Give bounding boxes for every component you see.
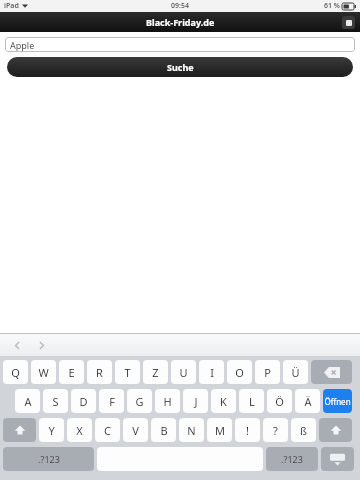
button[interactable]: .?123	[3, 447, 94, 471]
button[interactable]: S	[43, 389, 68, 413]
staticText: Black-Friday.de	[146, 16, 215, 28]
button[interactable]: D	[71, 389, 96, 413]
staticText: V	[132, 423, 139, 438]
button[interactable]: E	[59, 360, 84, 384]
button[interactable]: R	[87, 360, 112, 384]
staticText: ?	[273, 423, 278, 438]
staticText: iPad	[4, 1, 19, 11]
staticText: C	[104, 423, 111, 438]
button[interactable]: Ü	[283, 360, 308, 384]
button[interactable]: Next field	[32, 336, 50, 354]
staticText: T	[124, 365, 131, 380]
button[interactable]: ß	[291, 418, 316, 442]
staticText: B	[160, 423, 168, 438]
button[interactable]: V	[123, 418, 148, 442]
staticText: Ö	[275, 394, 284, 409]
button[interactable]: C	[95, 418, 120, 442]
staticText: Q	[11, 365, 20, 380]
staticText: Öffnen	[324, 396, 351, 407]
button[interactable]: H	[155, 389, 180, 413]
button[interactable]: Öffnen	[323, 389, 352, 413]
button[interactable]: Suche	[7, 57, 353, 77]
button[interactable]: Previous field	[8, 336, 26, 354]
staticText: O	[235, 365, 244, 380]
button[interactable]: O	[227, 360, 252, 384]
button[interactable]: Backspace	[311, 360, 352, 384]
staticText: X	[76, 423, 83, 438]
button[interactable]: K	[211, 389, 236, 413]
button[interactable]: J	[183, 389, 208, 413]
staticText: S	[52, 394, 59, 409]
staticText: 61 %	[324, 1, 340, 11]
staticText: Y	[48, 423, 55, 438]
staticText: R	[96, 365, 103, 380]
staticText: P	[264, 365, 271, 380]
staticText: U	[179, 365, 188, 380]
staticText: Ü	[291, 365, 300, 380]
staticText: Suche	[167, 61, 194, 73]
button[interactable]: F	[99, 389, 124, 413]
button[interactable]: Ä	[295, 389, 320, 413]
staticText: Apple	[10, 39, 35, 51]
button[interactable]: Apple	[5, 37, 355, 52]
button[interactable]: U	[171, 360, 196, 384]
button[interactable]: L	[239, 389, 264, 413]
staticText: W	[38, 365, 49, 380]
button[interactable]: !	[235, 418, 260, 442]
button[interactable]: ?	[263, 418, 288, 442]
staticText: K	[220, 394, 227, 409]
button[interactable]: X	[67, 418, 92, 442]
staticText: J	[194, 394, 198, 409]
button[interactable]: G	[127, 389, 152, 413]
staticText: .?123	[38, 453, 60, 465]
button[interactable]: P	[255, 360, 280, 384]
button[interactable]: Y	[39, 418, 64, 442]
button[interactable]: I	[199, 360, 224, 384]
button[interactable]: T	[115, 360, 140, 384]
staticText: 09:54	[171, 1, 189, 11]
staticText: ß	[300, 423, 307, 438]
button[interactable]: N	[179, 418, 204, 442]
button[interactable]: W	[31, 360, 56, 384]
button[interactable]: Shift	[3, 418, 36, 442]
staticText: A	[24, 394, 32, 409]
button[interactable]: Shift right	[319, 418, 352, 442]
button[interactable]: Ö	[267, 389, 292, 413]
button[interactable]: M	[207, 418, 232, 442]
staticText: G	[135, 394, 144, 409]
staticText: I	[210, 365, 214, 380]
staticText: Ä	[304, 394, 312, 409]
button[interactable]: A	[15, 389, 40, 413]
button[interactable]: Hide keyboard	[321, 447, 354, 471]
staticText: H	[163, 394, 172, 409]
button[interactable]: B	[151, 418, 176, 442]
button[interactable]: .?123	[266, 447, 318, 471]
staticText: Z	[152, 365, 159, 380]
button[interactable]: Z	[143, 360, 168, 384]
staticText: M	[215, 423, 225, 438]
button[interactable]: Menu	[342, 16, 355, 29]
staticText: L	[249, 394, 255, 409]
staticText: .?123	[281, 453, 303, 465]
staticText: !	[246, 423, 249, 438]
staticText: F	[109, 394, 115, 409]
button[interactable]: Q	[3, 360, 28, 384]
staticText: D	[79, 394, 88, 409]
staticText: E	[68, 365, 75, 380]
staticText: N	[187, 423, 196, 438]
